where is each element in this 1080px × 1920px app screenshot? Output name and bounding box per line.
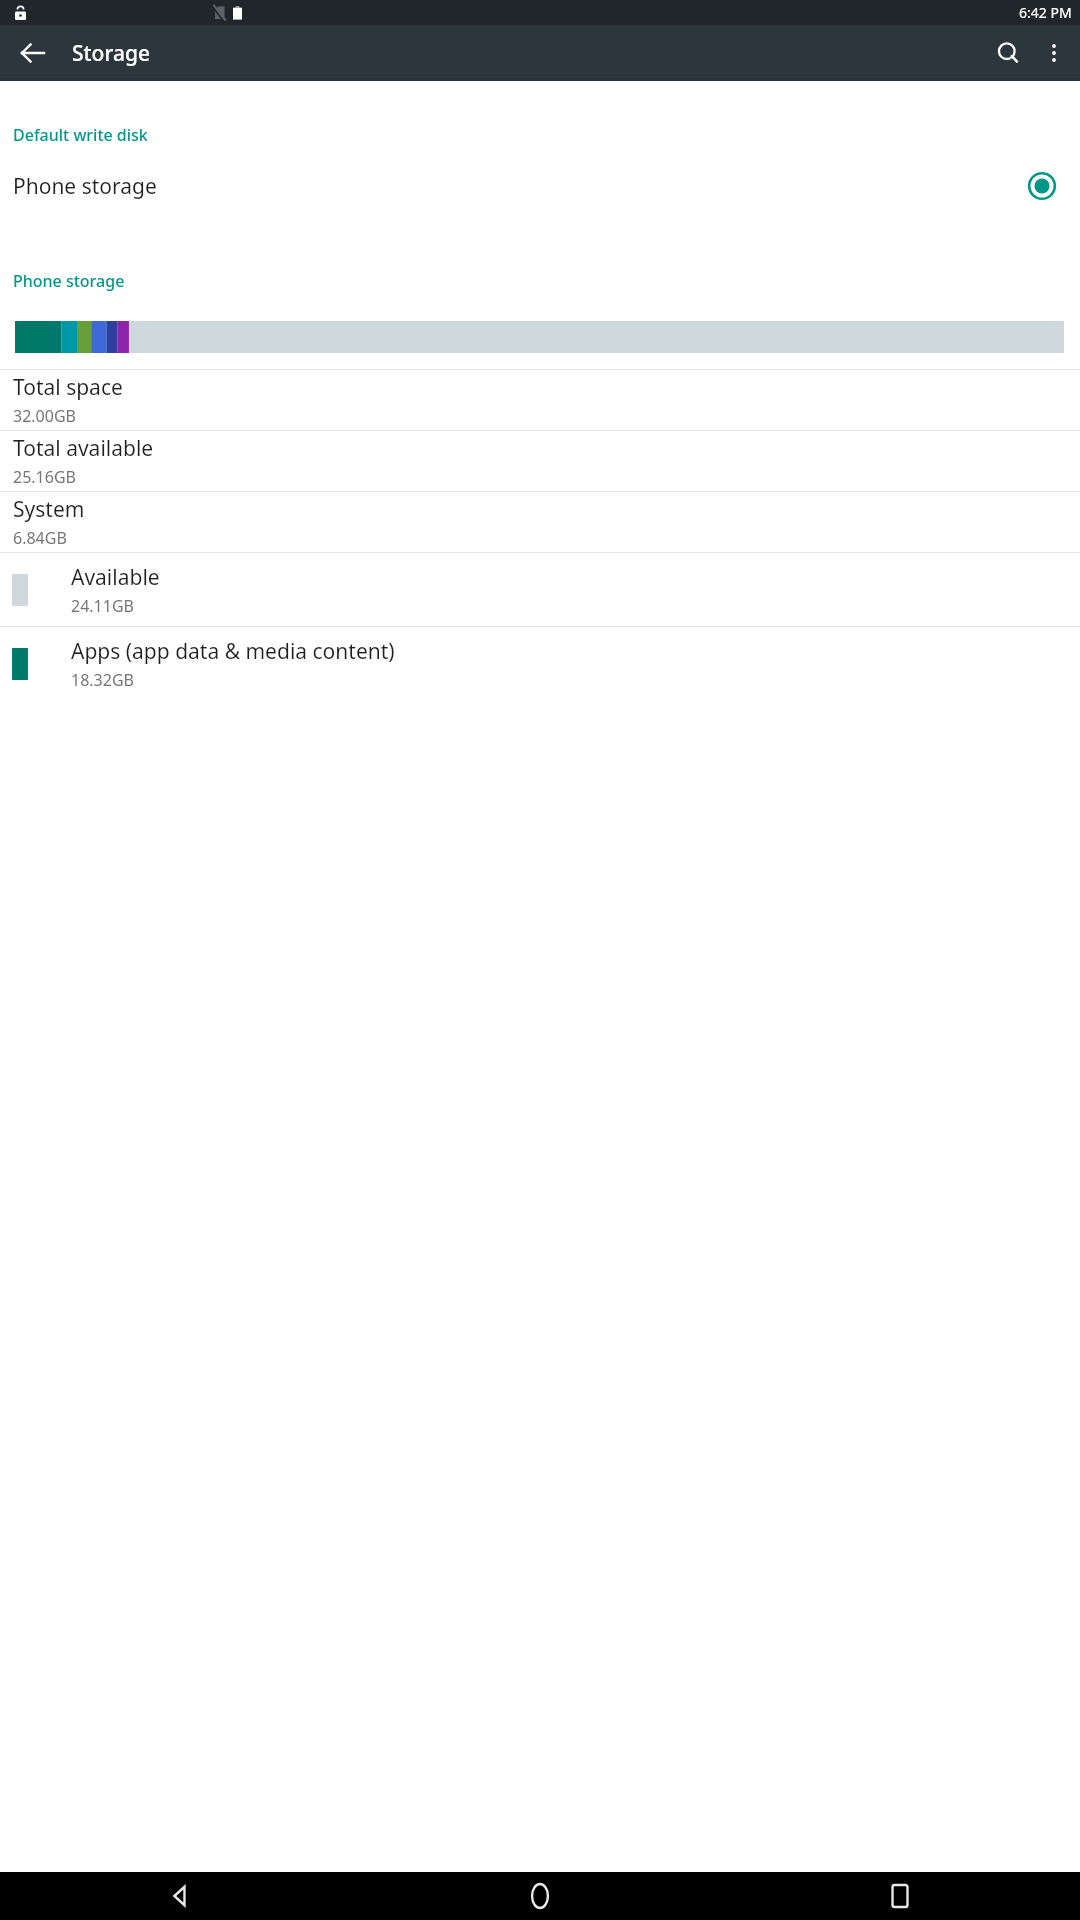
staticText: 6:42 PM [1019, 3, 1072, 22]
button[interactable]: Back [0, 1872, 360, 1920]
button[interactable]: More options [1032, 29, 1076, 77]
staticText: 32.00GB [13, 405, 76, 427]
staticText: 18.32GB [71, 669, 134, 691]
staticText: Total space [13, 373, 123, 402]
staticText: Apps (app data & media content) [71, 637, 395, 666]
button[interactable]: Phone storage [0, 155, 1080, 217]
staticText: Default write disk [13, 124, 148, 146]
button[interactable]: Home [360, 1872, 720, 1920]
staticText: Phone storage [13, 172, 1028, 201]
button[interactable]: Apps (app data & media content) [0, 627, 1080, 700]
staticText: 25.16GB [13, 466, 76, 488]
staticText: Storage [72, 39, 150, 68]
staticText: Phone storage [13, 270, 125, 292]
button[interactable]: Total available [0, 431, 1080, 491]
staticText: 6.84GB [13, 527, 67, 549]
staticText: Available [71, 563, 160, 592]
button[interactable]: Total space [0, 370, 1080, 430]
staticText: Total available [13, 434, 154, 463]
button[interactable]: Search [984, 29, 1032, 77]
button[interactable]: System [0, 492, 1080, 552]
button[interactable]: Available [0, 553, 1080, 626]
staticText: 24.11GB [71, 595, 134, 617]
button[interactable]: Back [9, 29, 57, 77]
staticText: System [13, 495, 85, 524]
button[interactable]: Recents [720, 1872, 1080, 1920]
